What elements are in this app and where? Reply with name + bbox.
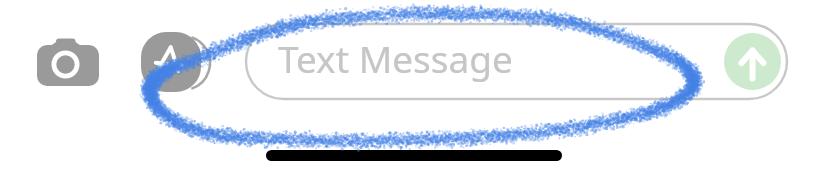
- button[interactable]: App Store: [141, 32, 201, 92]
- button[interactable]: Send: [724, 33, 781, 90]
- button[interactable]: Text Message: [246, 24, 787, 99]
- button[interactable]: Camera: [22, 26, 114, 98]
- staticText: Text Message: [278, 33, 513, 83]
